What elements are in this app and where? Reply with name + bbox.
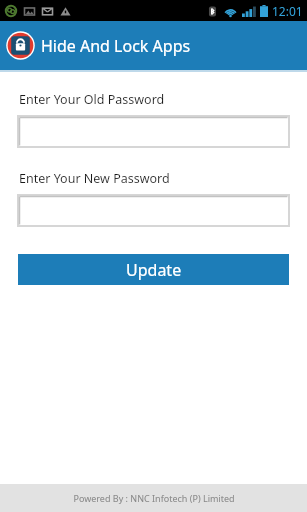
staticText: Update	[126, 259, 182, 281]
staticText: Enter Your Old Password	[19, 91, 165, 108]
staticText: Enter Your New Password	[19, 170, 170, 187]
button[interactable]	[18, 116, 289, 147]
staticText: Powered By : NNC Infotech (P) Limited	[73, 492, 235, 504]
button[interactable]: Update	[18, 254, 289, 285]
other: App icon	[5, 30, 36, 61]
button[interactable]	[18, 195, 289, 226]
staticText: 12:01	[272, 3, 303, 19]
staticText: Hide And Lock Apps	[41, 35, 191, 57]
